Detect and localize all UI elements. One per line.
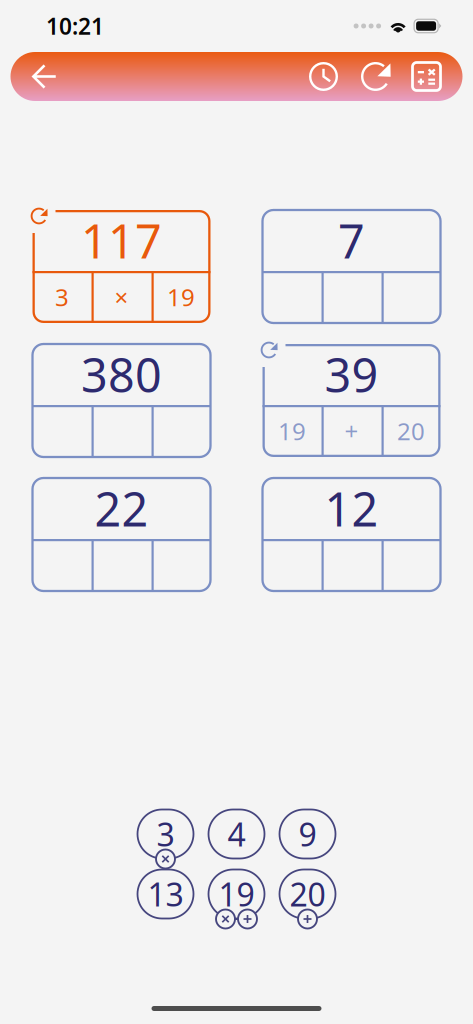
- staticText: 22: [94, 477, 148, 539]
- button[interactable]: 13: [137, 869, 193, 929]
- staticText: 13: [147, 873, 183, 915]
- staticText: 19: [167, 281, 195, 313]
- button[interactable]: 7: [262, 210, 440, 323]
- staticText: 3: [55, 281, 69, 313]
- staticText: 117: [81, 209, 162, 271]
- button[interactable]: 39: [262, 344, 440, 457]
- staticText: +: [344, 415, 358, 447]
- button[interactable]: 12: [262, 478, 440, 591]
- staticText: ×: [114, 281, 128, 313]
- staticText: 20: [289, 873, 325, 915]
- staticText: 19: [218, 873, 254, 915]
- button[interactable]: 22: [32, 478, 210, 591]
- staticText: 10:21: [46, 11, 104, 41]
- staticText: 12: [324, 477, 378, 539]
- staticText: 9: [298, 813, 316, 855]
- button[interactable]: Back: [20, 52, 68, 101]
- staticText: 3: [156, 813, 174, 855]
- button[interactable]: 20: [279, 869, 335, 929]
- button[interactable]: History: [297, 52, 349, 101]
- staticText: 20: [397, 415, 425, 447]
- button[interactable]: 3: [137, 809, 193, 869]
- staticText: 4: [227, 813, 245, 855]
- staticText: 39: [324, 343, 378, 405]
- button[interactable]: Calculator: [401, 52, 451, 101]
- button[interactable]: 4: [208, 809, 264, 869]
- button[interactable]: 9: [279, 809, 335, 869]
- button[interactable]: 117: [32, 210, 210, 323]
- button[interactable]: 380: [32, 344, 210, 457]
- staticText: 380: [81, 343, 162, 405]
- staticText: 7: [338, 209, 365, 271]
- button[interactable]: Restart: [349, 52, 401, 101]
- staticText: 19: [278, 415, 306, 447]
- button[interactable]: 19: [208, 869, 264, 929]
